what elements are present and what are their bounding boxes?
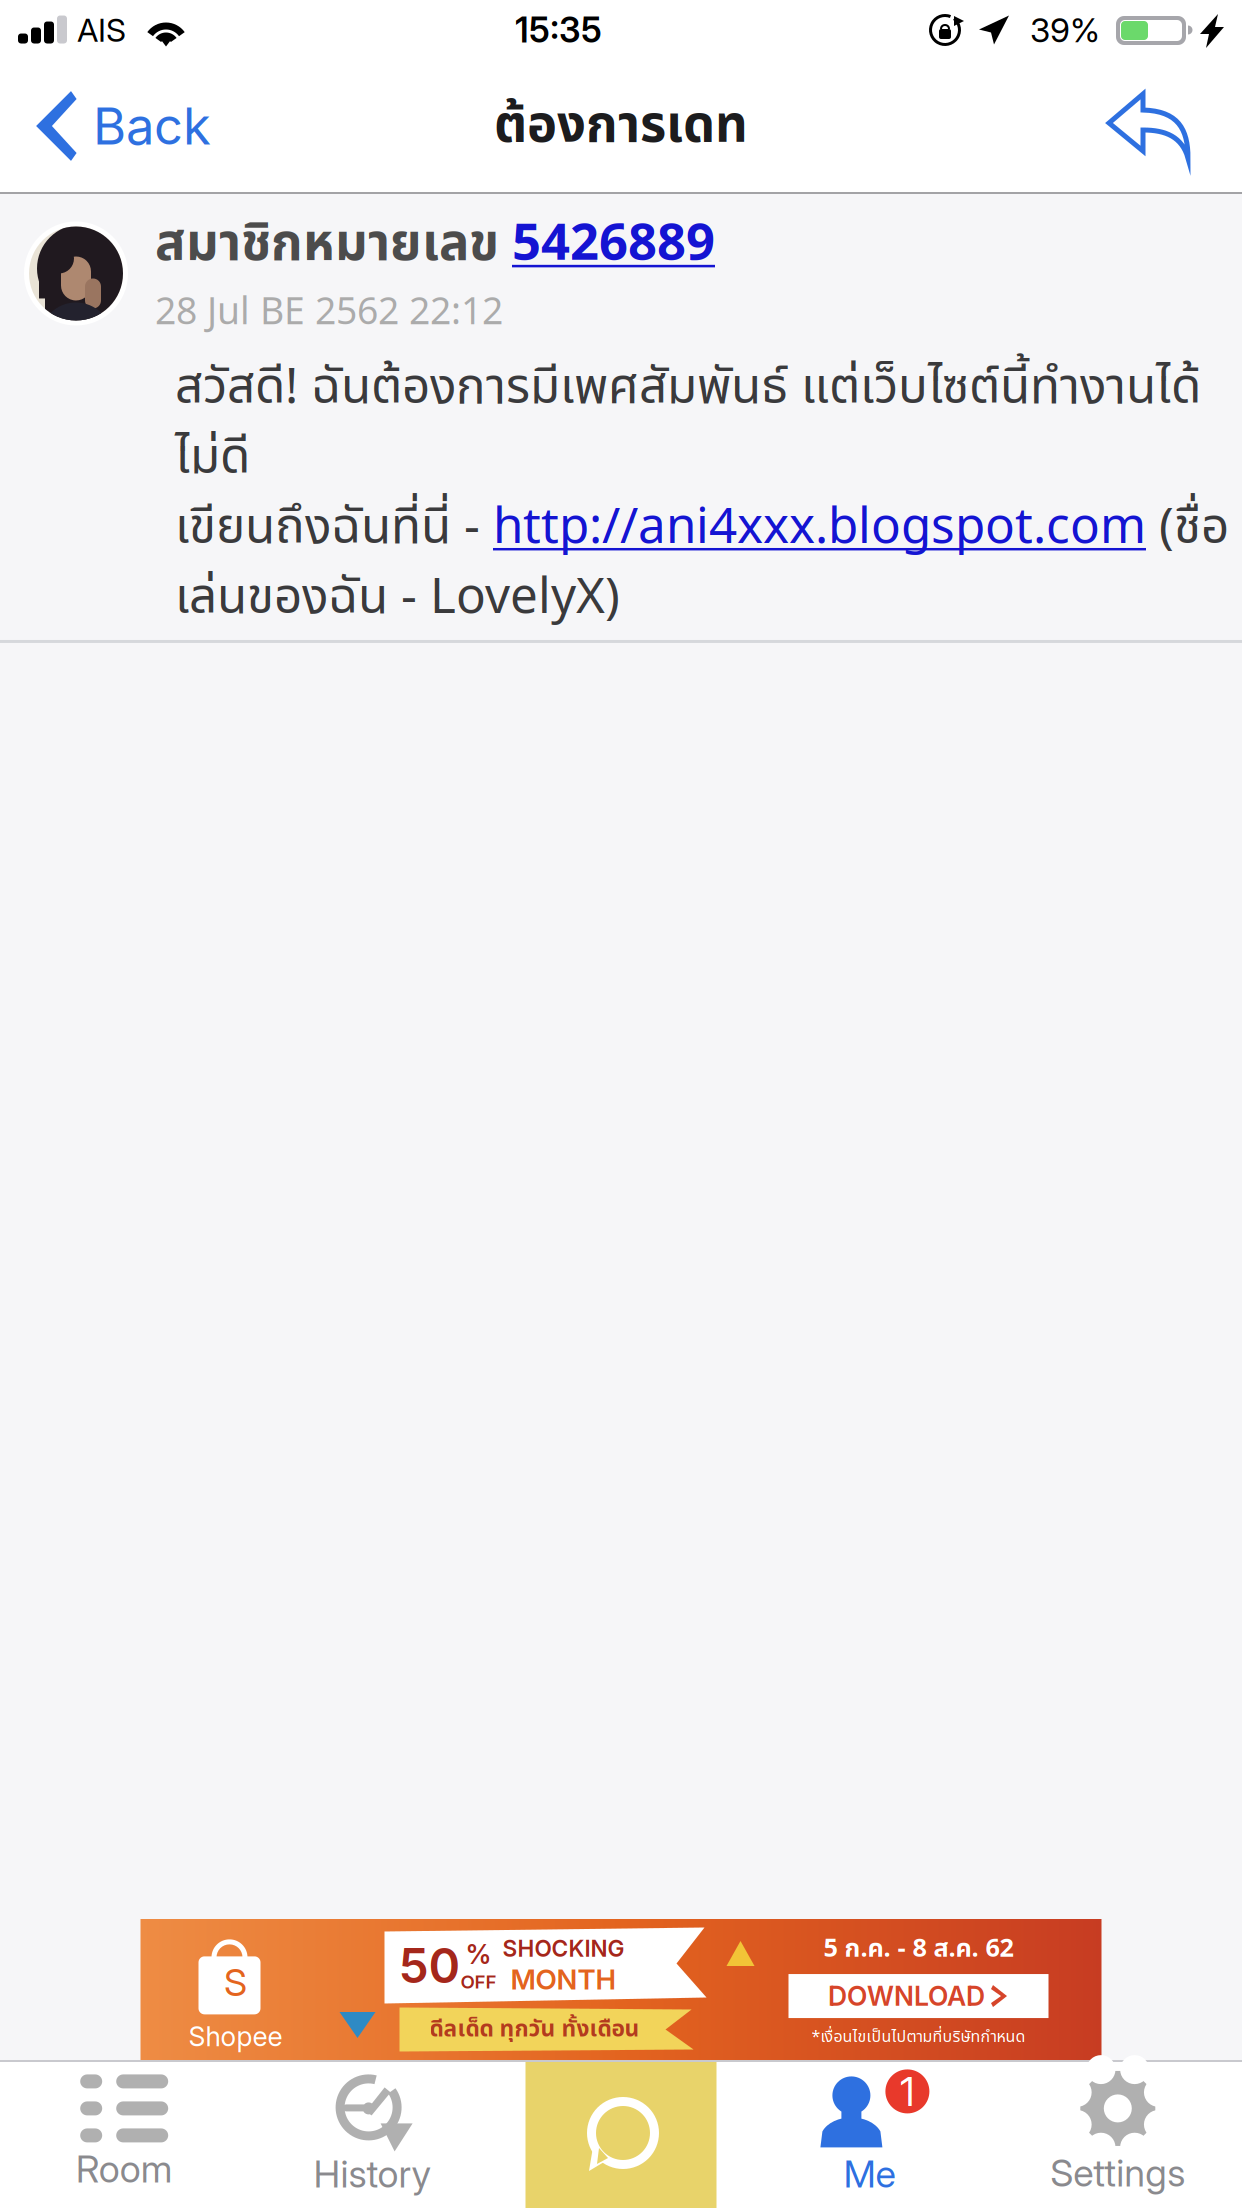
staticText: 1 xyxy=(900,2067,915,2116)
staticText: ไม่ดี xyxy=(175,421,250,495)
staticText: MONTH xyxy=(510,1962,616,1996)
staticText: ต้องการเดท xyxy=(494,88,748,164)
button[interactable]: Settings xyxy=(994,2062,1242,2208)
staticText: เขียนถึงฉันที่นี่ - xyxy=(175,491,493,565)
button[interactable]: Reply xyxy=(1092,60,1242,192)
staticText: DOWNLOAD xyxy=(828,1980,985,2012)
staticText: 15:35 xyxy=(515,9,602,51)
staticText: *เงื่อนไขเป็นไปตามที่บริษัทกำหนด xyxy=(811,2025,1025,2049)
staticText: Room xyxy=(76,2146,173,2192)
button[interactable]: History xyxy=(248,2062,497,2208)
staticText: 5 ก.ค. - 8 ส.ค. 62 xyxy=(823,1930,1013,1968)
staticText: SHOCKING xyxy=(502,1935,624,1962)
staticText: Settings xyxy=(1050,2150,1185,2196)
staticText: 39% xyxy=(1030,10,1100,50)
staticText: Back xyxy=(93,95,211,157)
button[interactable]: Room xyxy=(0,2062,248,2208)
button[interactable]: 1 xyxy=(745,2062,994,2208)
staticText: Me xyxy=(843,2151,895,2197)
button[interactable]: Shopee advertisement xyxy=(140,1919,1101,2060)
staticText: 50 xyxy=(398,1936,460,1995)
staticText: http://ani4xxx.blogspot.com xyxy=(493,491,1146,565)
button[interactable]: Back xyxy=(0,60,227,192)
staticText: S xyxy=(224,1960,247,2005)
staticText: % xyxy=(465,1938,491,1970)
staticText: สวัสดี! ฉันต้องการมีเพศสัมพันธ์ แต่เว็บไ… xyxy=(175,351,1201,425)
staticText: History xyxy=(314,2151,432,2197)
button[interactable]: Chat xyxy=(525,2062,716,2208)
staticText: AIS xyxy=(77,11,126,49)
staticText: 28 Jul BE 2562 22:12 xyxy=(155,285,503,341)
staticText: OFF xyxy=(460,1970,496,1993)
staticText: (ชื่อ xyxy=(1146,491,1229,565)
staticText: ดีลเด็ด ทุกวัน ทั้งเดือน xyxy=(429,2012,639,2047)
staticText: สมาชิกหมายเลข xyxy=(155,206,512,283)
staticText: 5426889 xyxy=(512,206,715,283)
staticText: เล่นของฉัน - LovelyX) xyxy=(175,561,620,635)
staticText: Shopee xyxy=(188,2020,282,2053)
